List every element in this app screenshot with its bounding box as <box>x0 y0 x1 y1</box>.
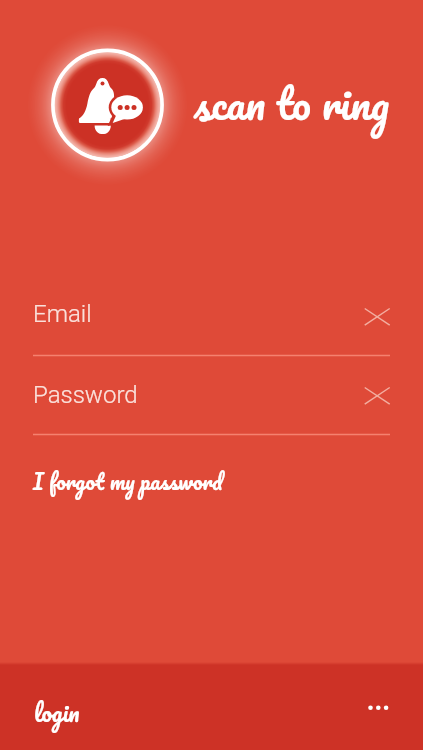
staticText: scan to ring <box>194 67 390 139</box>
staticText: Password <box>33 381 138 409</box>
button[interactable]: Email <box>33 290 390 368</box>
button[interactable]: More options <box>347 665 423 750</box>
staticText: login <box>34 692 80 732</box>
staticText: Email <box>33 300 92 328</box>
button[interactable]: I forgot my password <box>21 455 237 510</box>
button[interactable]: Password <box>33 371 390 447</box>
staticText: I forgot my password <box>33 463 223 500</box>
button[interactable]: login <box>0 665 347 750</box>
